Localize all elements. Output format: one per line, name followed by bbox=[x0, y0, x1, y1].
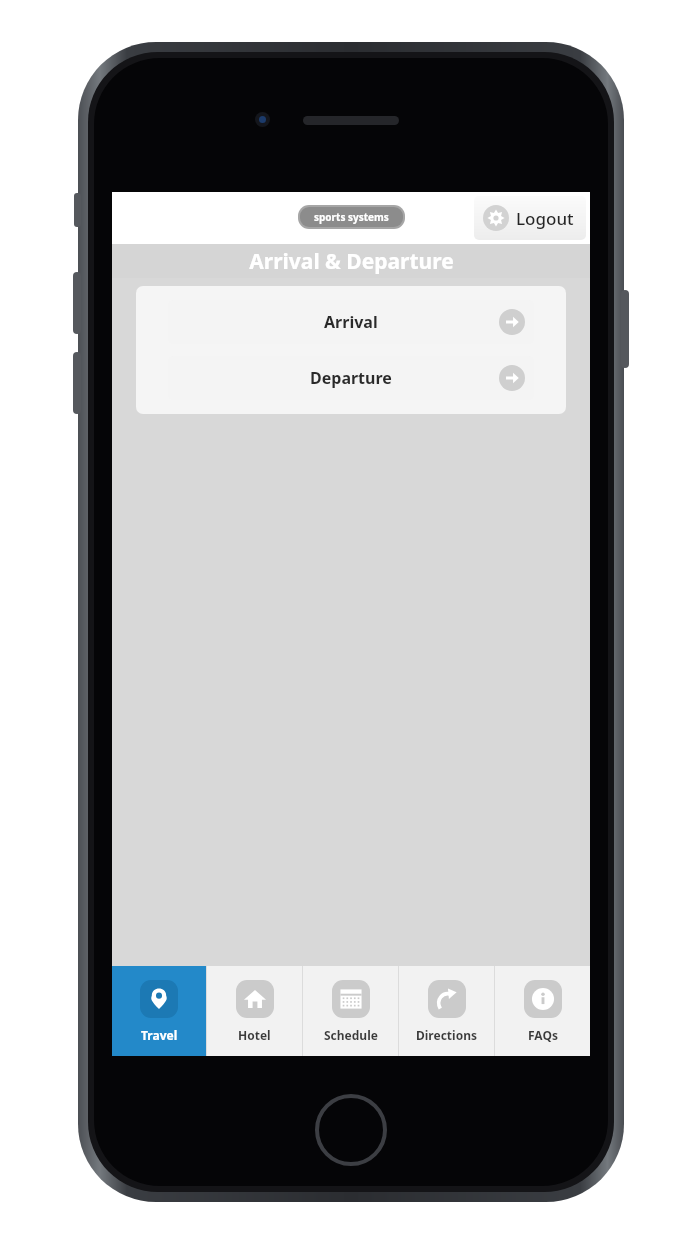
button[interactable]: Arrival bbox=[168, 300, 534, 344]
button[interactable]: FAQs bbox=[495, 966, 590, 1056]
button[interactable]: Hotel bbox=[207, 966, 302, 1056]
staticText: Directions bbox=[416, 1027, 477, 1043]
staticText: Travel bbox=[141, 1027, 178, 1043]
staticText: Logout bbox=[516, 207, 574, 230]
button[interactable]: Travel bbox=[112, 966, 206, 1056]
staticText: Schedule bbox=[324, 1027, 378, 1043]
staticText: FAQs bbox=[528, 1027, 558, 1043]
button[interactable]: Logout bbox=[474, 196, 586, 240]
staticText: Arrival bbox=[324, 311, 378, 333]
button[interactable]: Directions bbox=[399, 966, 494, 1056]
button[interactable]: Schedule bbox=[303, 966, 398, 1056]
staticText: Arrival & Departure bbox=[249, 247, 454, 276]
button[interactable]: sports systems bbox=[298, 205, 405, 229]
staticText: Departure bbox=[310, 367, 392, 389]
staticText: Hotel bbox=[238, 1027, 271, 1043]
staticText: sports systems bbox=[314, 210, 389, 224]
button[interactable]: Departure bbox=[168, 356, 534, 400]
